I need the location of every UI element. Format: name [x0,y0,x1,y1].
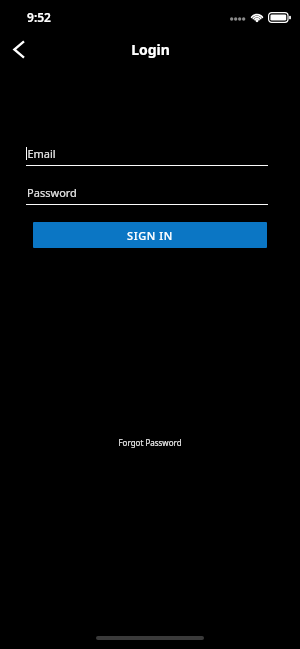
button[interactable]: Back [2,33,34,65]
staticText: SIGN IN [127,228,173,243]
staticText: Login [131,40,170,59]
staticText: Email [27,146,56,161]
button[interactable]: Password [26,179,268,205]
staticText: Forgot Password [118,437,182,448]
button[interactable]: SIGN IN [33,222,267,248]
button[interactable]: Forgot Password [112,435,188,450]
staticText: Password [27,185,77,200]
staticText: 9:52 [27,9,51,25]
button[interactable]: Email [26,140,268,166]
